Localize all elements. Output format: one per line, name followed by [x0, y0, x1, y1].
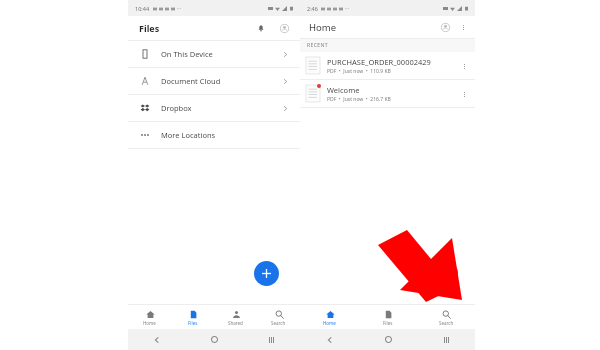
staticText: ··· [177, 5, 182, 12]
button[interactable]: Recents [243, 329, 300, 350]
button[interactable]: Search [417, 305, 475, 329]
staticText: On This Device [161, 49, 213, 59]
button[interactable]: Document Cloud [128, 68, 300, 94]
button[interactable]: Search [257, 305, 300, 329]
button[interactable]: Account [437, 19, 453, 35]
staticText: Home [323, 320, 336, 326]
button[interactable]: Notifications [253, 20, 269, 36]
staticText: 2:46 [307, 5, 318, 12]
staticText: Dropbox [161, 103, 192, 113]
button[interactable]: Files [171, 305, 214, 329]
button[interactable]: Home [128, 305, 171, 329]
staticText: PURCHASE_ORDER_00002429 [327, 57, 431, 67]
button[interactable]: Recents [417, 329, 475, 350]
staticText: Home [309, 21, 337, 34]
staticText: ··· [345, 5, 350, 12]
button[interactable]: PURCHASE_ORDER_00002429 [300, 52, 475, 79]
staticText: PDF • Just now • 216.7 KB [327, 96, 391, 103]
button[interactable]: Add [254, 261, 279, 286]
button[interactable]: On This Device [128, 41, 300, 67]
button[interactable]: Files [359, 305, 417, 329]
staticText: Shared [228, 320, 243, 326]
button[interactable]: More options [457, 59, 471, 73]
staticText: More Locations [161, 130, 216, 140]
button[interactable]: Home [359, 329, 417, 350]
button[interactable]: Welcome [300, 80, 475, 107]
button[interactable]: More Locations [128, 122, 300, 148]
button[interactable]: More options [456, 20, 470, 34]
button[interactable]: Shared [214, 305, 257, 329]
staticText: RECENT [307, 42, 328, 49]
staticText: Home [143, 320, 156, 326]
staticText: Search [271, 320, 286, 326]
staticText: Search [439, 320, 454, 326]
button[interactable]: Home [186, 329, 243, 350]
staticText: Welcome [327, 85, 360, 95]
button[interactable]: Add [433, 261, 458, 286]
button[interactable]: Dropbox [128, 95, 300, 121]
staticText: Files [188, 320, 198, 326]
button[interactable]: Back [300, 329, 359, 350]
button[interactable]: Home [300, 305, 359, 329]
button[interactable]: Back [128, 329, 186, 350]
staticText: Files [383, 320, 393, 326]
button[interactable]: Account [276, 20, 292, 36]
staticText: PDF • Just now • 110.9 KB [327, 68, 391, 75]
button[interactable]: More options [457, 87, 471, 101]
staticText: Files [139, 22, 160, 34]
staticText: Document Cloud [161, 76, 221, 86]
staticText: 10:44 [135, 5, 150, 12]
